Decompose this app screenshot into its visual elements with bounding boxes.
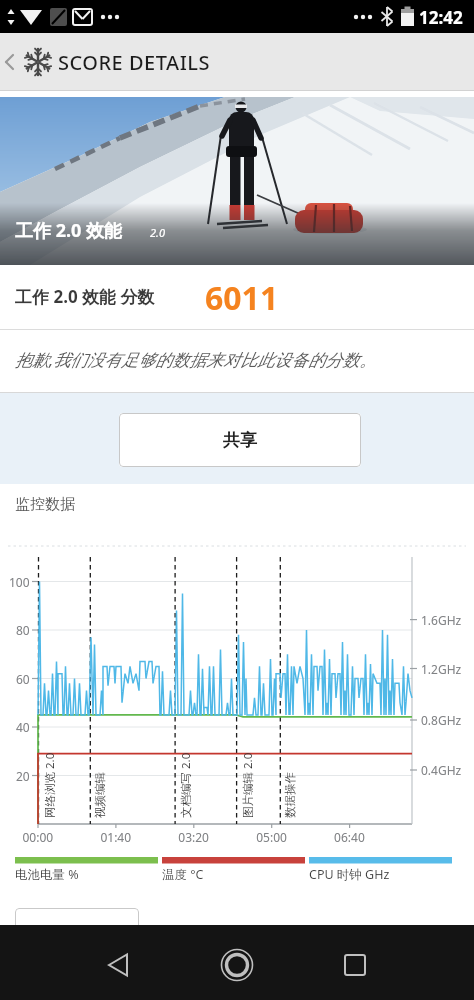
- staticText: 抱歉,我们没有足够的数据来对比此设备的分数。: [15, 348, 377, 371]
- button[interactable]: [316, 925, 474, 1000]
- staticText: SCORE DETAILS: [58, 49, 210, 76]
- staticText: 6011: [205, 276, 279, 320]
- button[interactable]: [158, 925, 316, 1000]
- staticText: 12:42: [419, 6, 463, 29]
- button[interactable]: [0, 925, 158, 1000]
- staticText: 共享: [223, 430, 257, 451]
- staticText: 监控数据: [15, 495, 75, 514]
- button[interactable]: SCORE DETAILS: [0, 33, 474, 91]
- staticText: 工作 2.0 效能: [15, 218, 123, 243]
- button[interactable]: 共享: [119, 413, 361, 467]
- staticText: 工作 2.0 效能 分数: [15, 285, 155, 308]
- button[interactable]: [15, 908, 139, 925]
- staticText: 2.0: [150, 225, 165, 240]
